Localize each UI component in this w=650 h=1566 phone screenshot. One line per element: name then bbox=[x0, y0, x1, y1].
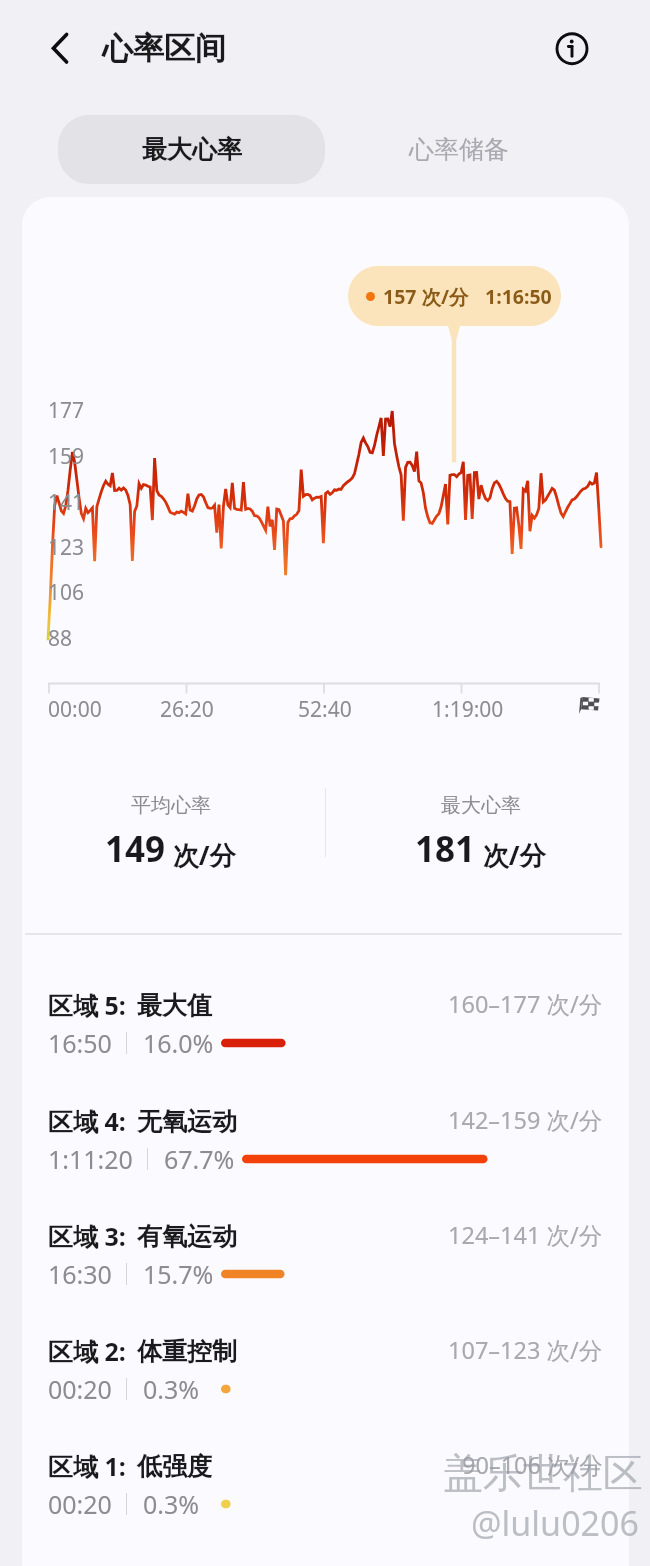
staticText: 26:20 bbox=[160, 695, 214, 724]
button[interactable]: 最大心率 bbox=[332, 793, 629, 873]
button[interactable]: 最大心率 bbox=[58, 115, 325, 184]
staticText: 15.7% bbox=[143, 1257, 214, 1291]
staticText: 次/分 bbox=[166, 837, 236, 873]
staticText: 体重控制 bbox=[137, 1336, 237, 1367]
button[interactable]: 区域 4: bbox=[0, 1094, 650, 1194]
staticText: 0.3% bbox=[143, 1487, 200, 1521]
button[interactable]: Info bbox=[548, 25, 596, 73]
staticText: 16:50 bbox=[48, 1026, 112, 1060]
staticText: 177 bbox=[48, 396, 85, 425]
staticText: 181 bbox=[415, 825, 476, 873]
staticText: 67.7% bbox=[164, 1142, 235, 1176]
staticText: 最大心率 bbox=[142, 134, 242, 165]
staticText: 00:00 bbox=[48, 695, 102, 724]
staticText: 有氧运动 bbox=[137, 1221, 237, 1252]
staticText: 16:30 bbox=[48, 1257, 112, 1291]
staticText: 次/分 bbox=[476, 837, 546, 873]
staticText: 区域 5: bbox=[48, 988, 126, 1022]
staticText: 90–106 次/分 bbox=[462, 1449, 603, 1481]
staticText: 区域 3: bbox=[48, 1219, 126, 1253]
staticText: 1:11:20 bbox=[48, 1142, 133, 1176]
staticText: 52:40 bbox=[298, 695, 352, 724]
button[interactable]: 心率储备 bbox=[325, 115, 592, 184]
button[interactable]: 平均心率 bbox=[22, 793, 319, 873]
staticText: 心率储备 bbox=[409, 134, 509, 165]
staticText: 88 bbox=[48, 624, 73, 653]
staticText: 123 bbox=[48, 533, 85, 562]
button[interactable]: 区域 1: bbox=[0, 1439, 650, 1539]
staticText: 最大心率 bbox=[441, 793, 521, 818]
staticText: 区域 1: bbox=[48, 1449, 126, 1483]
staticText: 106 bbox=[48, 578, 85, 607]
staticText: 区域 4: bbox=[48, 1104, 126, 1138]
button[interactable]: 区域 2: bbox=[0, 1324, 650, 1424]
button[interactable]: Back bbox=[37, 25, 83, 71]
staticText: 159 bbox=[48, 442, 85, 471]
staticText: 124–141 次/分 bbox=[448, 1219, 603, 1251]
staticText: @lulu0206 bbox=[471, 1500, 639, 1546]
staticText: 141 bbox=[48, 488, 85, 517]
button[interactable]: 区域 5: bbox=[0, 978, 650, 1078]
staticText: 107–123 次/分 bbox=[448, 1334, 603, 1366]
staticText: 无氧运动 bbox=[137, 1106, 237, 1137]
staticText: 1:19:00 bbox=[432, 695, 504, 724]
button[interactable]: Finish bbox=[578, 692, 604, 718]
staticText: 心率区间 bbox=[102, 29, 226, 68]
staticText: 00:20 bbox=[48, 1487, 112, 1521]
staticText: 157 次/分 bbox=[383, 283, 469, 310]
staticText: 最大值 bbox=[137, 990, 212, 1021]
staticText: 0.3% bbox=[143, 1372, 200, 1406]
staticText: 160–177 次/分 bbox=[448, 988, 603, 1020]
staticText: 盖乐世社区 bbox=[443, 1448, 643, 1498]
staticText: 1:16:50 bbox=[485, 283, 552, 310]
staticText: 区域 2: bbox=[48, 1334, 126, 1368]
button[interactable]: 157 次/分 bbox=[348, 266, 561, 326]
staticText: 149 bbox=[105, 825, 166, 873]
staticText: 低强度 bbox=[137, 1451, 212, 1482]
staticText: 00:20 bbox=[48, 1372, 112, 1406]
staticText: 142–159 次/分 bbox=[448, 1104, 603, 1136]
staticText: 16.0% bbox=[143, 1026, 214, 1060]
button[interactable]: 区域 3: bbox=[0, 1209, 650, 1309]
staticText: 平均心率 bbox=[131, 793, 211, 818]
